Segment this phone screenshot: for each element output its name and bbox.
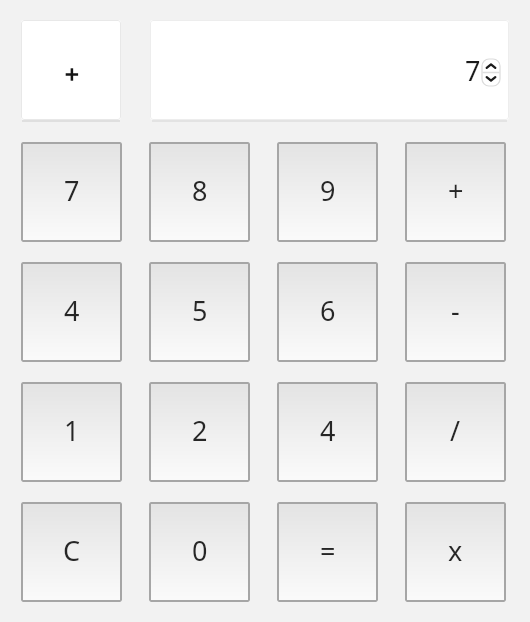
button[interactable]: + [405, 142, 506, 242]
button[interactable]: C [21, 502, 122, 602]
button[interactable]: - [405, 262, 506, 362]
button[interactable]: / [405, 382, 506, 482]
button[interactable]: 8 [149, 142, 250, 242]
button[interactable]: 7 [21, 142, 122, 242]
staticText: 7 [64, 172, 80, 209]
staticText: + [448, 172, 464, 209]
staticText: x [448, 532, 463, 569]
staticText: C [63, 532, 81, 569]
staticText: = [320, 532, 336, 569]
staticText: 9 [320, 172, 336, 209]
staticText: 4 [64, 292, 80, 329]
button[interactable]: 7 [150, 20, 509, 120]
staticText: - [451, 292, 460, 329]
staticText: 4 [320, 412, 336, 449]
staticText: 0 [192, 532, 208, 569]
button[interactable]: 4 [21, 262, 122, 362]
button[interactable]: = [277, 502, 378, 602]
staticText: / [450, 412, 461, 449]
button[interactable]: 6 [277, 262, 378, 362]
button[interactable]: 1 [21, 382, 122, 482]
staticText: 8 [192, 172, 208, 209]
button[interactable]: 5 [149, 262, 250, 362]
button[interactable] [21, 20, 121, 120]
button[interactable]: 4 [277, 382, 378, 482]
staticText: 7 [465, 52, 481, 89]
staticText: 1 [64, 412, 80, 449]
staticText: 2 [192, 412, 208, 449]
button[interactable]: 0 [149, 502, 250, 602]
staticText: 6 [320, 292, 336, 329]
staticText: 5 [192, 292, 208, 329]
button[interactable]: 9 [277, 142, 378, 242]
button[interactable]: 2 [149, 382, 250, 482]
button[interactable]: x [405, 502, 506, 602]
